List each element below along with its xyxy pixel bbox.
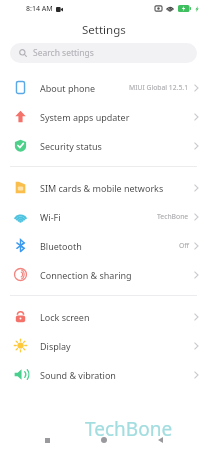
staticText: Search settings xyxy=(33,47,94,59)
button[interactable]: Home xyxy=(94,430,114,450)
button[interactable]: Lock screen xyxy=(0,302,207,331)
staticText: Lock screen xyxy=(40,311,90,323)
button[interactable]: Search settings xyxy=(10,43,197,63)
button[interactable]: Recents xyxy=(37,430,57,450)
staticText: System apps updater xyxy=(40,111,130,123)
staticText: Settings xyxy=(82,22,126,38)
staticText: Sound & vibration xyxy=(40,369,116,381)
button[interactable]: Sound & vibration xyxy=(0,360,207,389)
staticText: About phone xyxy=(40,82,96,94)
button[interactable]: Bluetooth xyxy=(0,231,207,260)
staticText: Off xyxy=(179,241,189,250)
staticText: Connection & sharing xyxy=(40,269,132,281)
button[interactable]: Back xyxy=(150,430,170,450)
button[interactable]: Display xyxy=(0,331,207,360)
button[interactable]: Connection & sharing xyxy=(0,260,207,289)
staticText: TechBone xyxy=(157,212,189,221)
staticText: Security status xyxy=(40,140,102,152)
button[interactable]: SIM cards & mobile networks xyxy=(0,173,207,202)
staticText: 8:14 AM xyxy=(26,4,53,14)
staticText: SIM cards & mobile networks xyxy=(40,182,164,194)
button[interactable]: Security status xyxy=(0,131,207,160)
staticText: Bluetooth xyxy=(40,240,82,252)
button[interactable]: About phone xyxy=(0,73,207,102)
button[interactable]: Wi-Fi xyxy=(0,202,207,231)
staticText: Wi-Fi xyxy=(40,211,61,223)
staticText: TechBone xyxy=(85,416,173,442)
button[interactable]: System apps updater xyxy=(0,102,207,131)
staticText: MIUI Global 12.5.1 xyxy=(129,83,189,92)
staticText: Display xyxy=(40,340,71,352)
